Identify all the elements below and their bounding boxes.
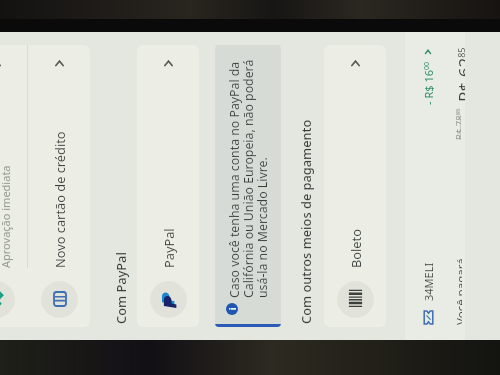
staticText: PayPal bbox=[160, 228, 177, 268]
button[interactable]: Cupom bbox=[413, 47, 443, 325]
staticText: Boleto bbox=[347, 229, 364, 268]
button[interactable]: Novo cartão de crédito bbox=[28, 45, 90, 327]
staticText: Com PayPal bbox=[112, 252, 129, 324]
staticText: Você pagará bbox=[453, 258, 462, 325]
button[interactable]: Dinheiro na conta bbox=[0, 45, 27, 327]
staticText: R$ 6285 bbox=[453, 47, 465, 102]
button[interactable]: PayPal bbox=[137, 45, 199, 327]
staticText: Caso você tenha uma conta no PayPal da C… bbox=[226, 55, 271, 298]
staticText: i bbox=[227, 307, 238, 310]
staticText: R$ 7885 bbox=[453, 108, 461, 140]
staticText: Aprovação imediata bbox=[0, 165, 13, 268]
staticText: Com outros meios de pagamento bbox=[297, 119, 314, 324]
staticText: 34MELI bbox=[421, 262, 436, 301]
staticText: - R$ 1600 bbox=[421, 62, 436, 105]
other: Cupom bbox=[423, 310, 434, 325]
staticText: Novo cartão de crédito bbox=[51, 131, 68, 268]
button[interactable]: Boleto bbox=[324, 45, 386, 327]
